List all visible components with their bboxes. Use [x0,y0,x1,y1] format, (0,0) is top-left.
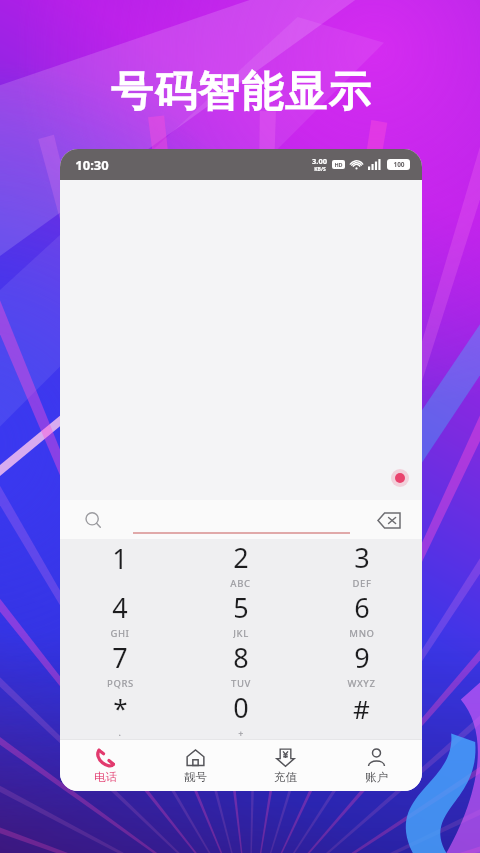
staticText: 0 [233,689,249,726]
staticText: JKL [233,627,249,639]
staticText: 3.00 [312,156,327,166]
staticText: 账户 [365,770,388,784]
staticText: HD [334,161,343,168]
button[interactable]: # [301,689,422,739]
staticText: MNO [349,627,375,639]
staticText: 1 [112,540,128,577]
staticText: 充值 [274,770,297,784]
button[interactable]: 6 [301,589,422,639]
button[interactable]: 0 [180,689,301,739]
staticText: + [238,727,244,739]
button[interactable]: 9 [301,639,422,689]
staticText: 7 [112,639,128,676]
staticText: KB/S [314,166,326,173]
button[interactable]: 账户 [331,739,422,791]
staticText: 2 [233,539,249,576]
staticText: 电话 [94,770,117,784]
button[interactable]: 3 [301,539,422,589]
staticText: 100 [393,160,405,169]
staticText: 9 [354,639,370,676]
staticText: ABC [230,577,251,589]
button[interactable]: Search [78,505,108,535]
staticText: 靓号 [184,770,207,784]
staticText: TUV [231,677,251,689]
button[interactable]: 电话 [60,739,150,791]
button[interactable]: 5 [180,589,301,639]
button[interactable]: 充值 [240,739,331,791]
staticText: . [118,726,122,738]
staticText: WXYZ [347,677,376,689]
staticText: GHI [110,627,130,639]
button[interactable]: 1 [60,539,180,589]
staticText: 号码智能显示 [110,66,371,119]
button[interactable]: Backspace [372,503,406,537]
staticText: 6 [354,589,370,626]
staticText: PQRS [107,677,134,689]
button[interactable]: 4 [60,589,180,639]
button[interactable]: * [60,689,180,739]
staticText: 4 [112,589,128,626]
staticText: 8 [233,639,249,676]
staticText: 3 [354,539,370,576]
button[interactable]: 7 [60,639,180,689]
staticText: # [353,691,370,726]
button[interactable]: 8 [180,639,301,689]
staticText: DEF [352,577,372,589]
staticText: 10:30 [75,156,109,174]
button[interactable]: 2 [180,539,301,589]
button[interactable]: 靓号 [150,739,240,791]
staticText: 5 [233,589,249,626]
staticText: * [113,690,128,725]
